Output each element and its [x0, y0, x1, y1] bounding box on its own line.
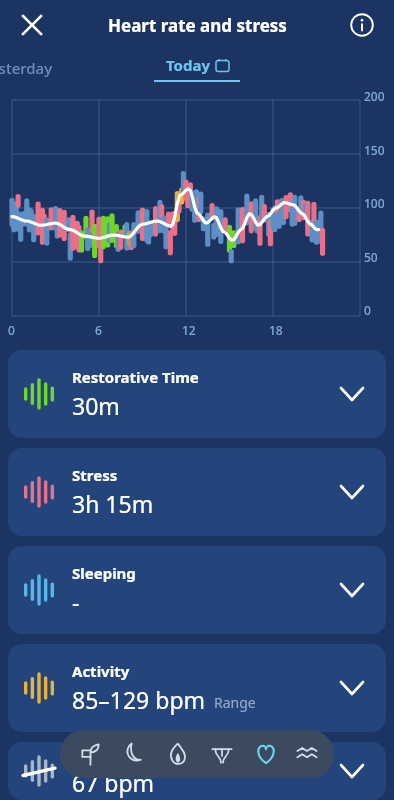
button[interactable]: Restorative Time: [8, 350, 386, 438]
button[interactable]: Expand Sleeping: [332, 570, 372, 610]
button[interactable]: Close: [10, 3, 54, 47]
button[interactable]: Expand Restorative Time: [332, 374, 372, 414]
staticText: Stress: [72, 465, 118, 485]
button[interactable]: Expand Activity: [332, 668, 372, 708]
staticText: 18: [269, 322, 283, 338]
staticText: Range: [214, 693, 256, 712]
staticText: Daytime: [72, 744, 136, 764]
staticText: 100: [364, 195, 385, 211]
button[interactable]: Yesterday: [0, 58, 53, 78]
button[interactable]: Activity: [8, 644, 386, 732]
staticText: 6: [95, 322, 102, 338]
staticText: 3h 15m: [72, 488, 154, 519]
staticText: -: [72, 586, 80, 617]
staticText: Heart rate and stress: [108, 14, 287, 37]
button[interactable]: SpO2: [288, 731, 326, 777]
staticText: Sleeping: [72, 563, 136, 583]
button[interactable]: Body composition: [68, 731, 112, 777]
button[interactable]: Sleeping: [8, 546, 386, 634]
button[interactable]: Calories: [156, 731, 200, 777]
staticText: 67 bpm: [72, 767, 155, 798]
staticText: 0: [8, 322, 15, 338]
staticText: Restorative Time: [72, 367, 199, 387]
staticText: 30m: [72, 390, 120, 421]
button[interactable]: Information: [340, 3, 384, 47]
staticText: 150: [364, 142, 385, 158]
button[interactable]: Sleep: [112, 731, 156, 777]
button[interactable]: Stress: [8, 448, 386, 536]
button[interactable]: Expand Daytime: [332, 751, 372, 791]
button[interactable]: Daytime: [8, 742, 386, 800]
button[interactable]: Heart rate: [244, 731, 288, 777]
button[interactable]: Stress: [200, 731, 244, 777]
staticText: Activity: [72, 661, 130, 681]
staticText: 0: [364, 302, 371, 318]
staticText: Today: [166, 55, 211, 75]
button[interactable]: Expand Stress: [332, 472, 372, 512]
button[interactable]: Today: [154, 55, 240, 82]
staticText: 12: [182, 322, 196, 338]
staticText: 50: [364, 249, 378, 265]
staticText: 85–129 bpm: [72, 684, 206, 715]
staticText: 200: [364, 88, 385, 104]
